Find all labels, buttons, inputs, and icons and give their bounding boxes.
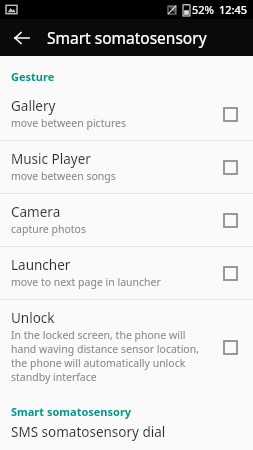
staticText: move between songs (11, 169, 116, 183)
staticText: move to next page in launcher (11, 275, 161, 289)
staticText: Camera (11, 203, 61, 221)
button[interactable]: Unlock (0, 300, 253, 394)
button[interactable]: Gallery (0, 88, 253, 140)
staticText: In the locked screen, the phone will han… (11, 328, 209, 384)
button[interactable]: Camera (0, 194, 253, 246)
staticText: capture photos (11, 222, 86, 236)
button[interactable]: Back (6, 22, 38, 54)
button[interactable]: Launcher checkbox (217, 260, 243, 286)
staticText: 12:45 (219, 2, 248, 17)
staticText: Smart somatosensory (47, 27, 207, 48)
staticText: Gesture (11, 69, 55, 84)
staticText: move between pictures (11, 116, 126, 130)
button[interactable]: Music Player (0, 141, 253, 193)
button[interactable]: Music Player checkbox (217, 154, 243, 180)
staticText: Music Player (11, 150, 91, 168)
staticText: SMS somatosensory dial (11, 423, 166, 441)
staticText: 52% (192, 2, 214, 17)
staticText: Unlock (11, 309, 55, 327)
button[interactable]: Gallery checkbox (217, 101, 243, 127)
button[interactable]: SMS somatosensory dial (0, 423, 253, 441)
button[interactable]: Launcher (0, 247, 253, 299)
staticText: Gallery (11, 97, 56, 115)
button[interactable]: Camera checkbox (217, 207, 243, 233)
staticText: Smart somatosensory (11, 404, 132, 419)
button[interactable]: Unlock checkbox (217, 334, 243, 360)
staticText: Launcher (11, 256, 71, 274)
